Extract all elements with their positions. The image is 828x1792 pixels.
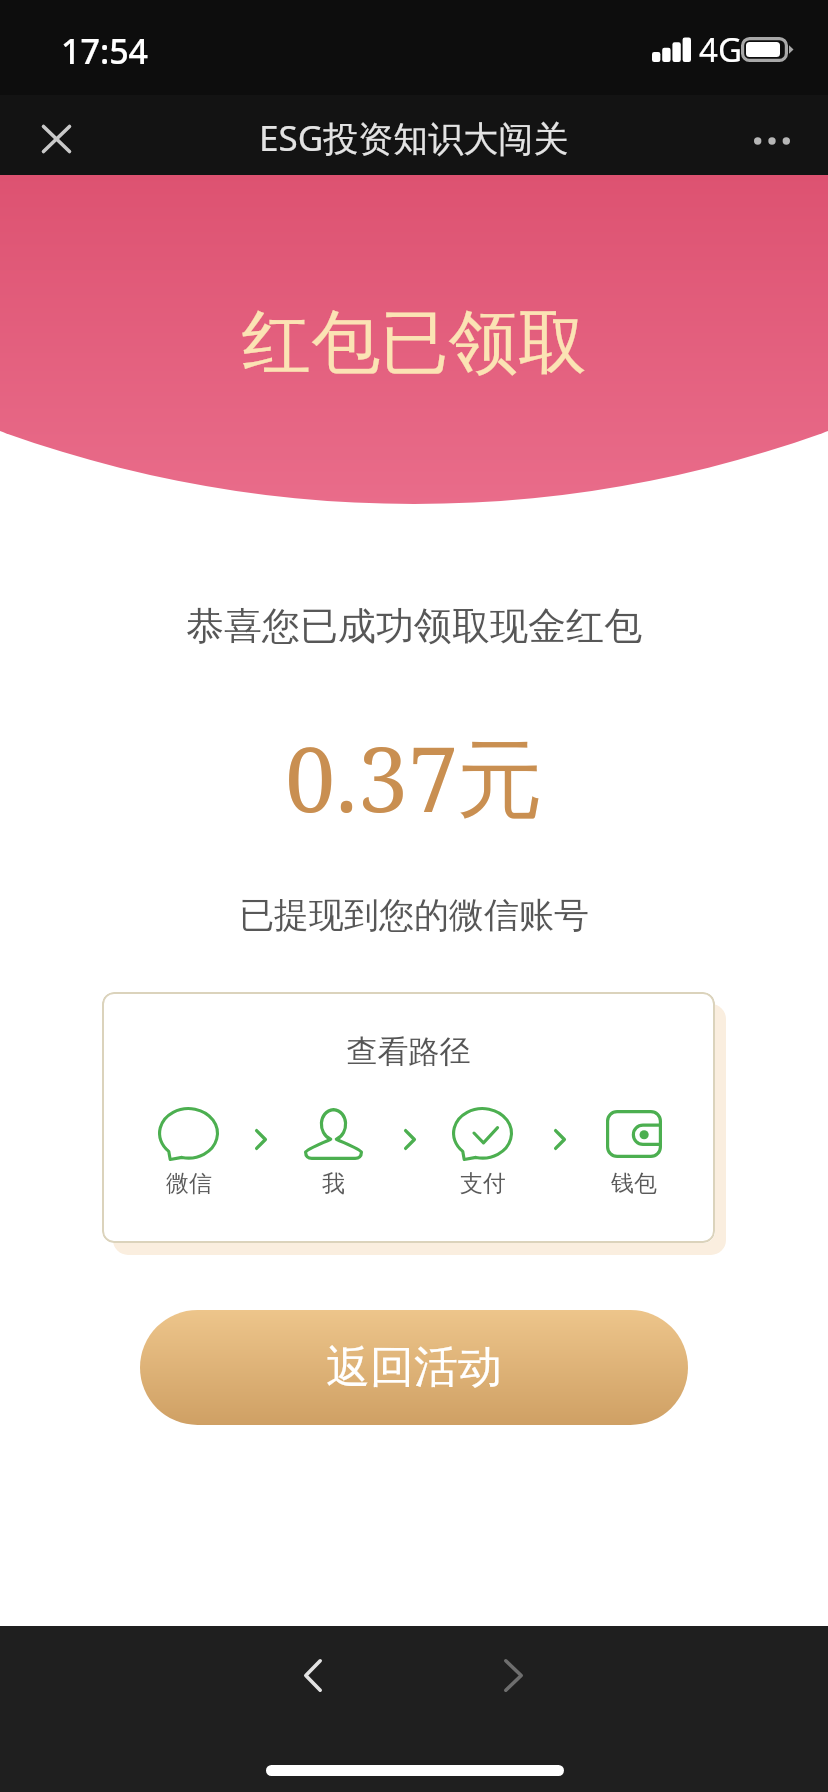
button[interactable]: 支付 <box>437 1107 527 1198</box>
staticText: 元 <box>457 726 543 834</box>
button[interactable]: 钱包 <box>589 1107 679 1198</box>
staticText: 恭喜您已成功领取现金红包 <box>0 602 828 650</box>
button[interactable]: More options <box>736 105 808 177</box>
staticText: 已提现到您的微信账号 <box>0 893 828 937</box>
button[interactable]: Forward <box>465 1627 561 1723</box>
staticText: 我 <box>322 1169 345 1198</box>
staticText: 17:54 <box>61 28 149 74</box>
button[interactable]: Close <box>20 103 92 175</box>
staticText: 钱包 <box>611 1169 657 1198</box>
button[interactable]: 返回活动 <box>140 1310 688 1425</box>
staticText: 查看路径 <box>102 1032 715 1071</box>
staticText: 0.37 <box>285 716 459 839</box>
button[interactable]: Back <box>265 1627 361 1723</box>
staticText: 微信 <box>166 1169 212 1198</box>
button[interactable]: 微信 <box>143 1107 233 1198</box>
staticText: 返回活动 <box>326 1340 502 1395</box>
staticText: ESG投资知识大闯关 <box>259 114 569 162</box>
button[interactable]: 我 <box>288 1107 378 1198</box>
staticText: 4G <box>699 27 742 72</box>
staticText: 支付 <box>460 1169 506 1198</box>
staticText: 红包已领取 <box>242 300 587 387</box>
